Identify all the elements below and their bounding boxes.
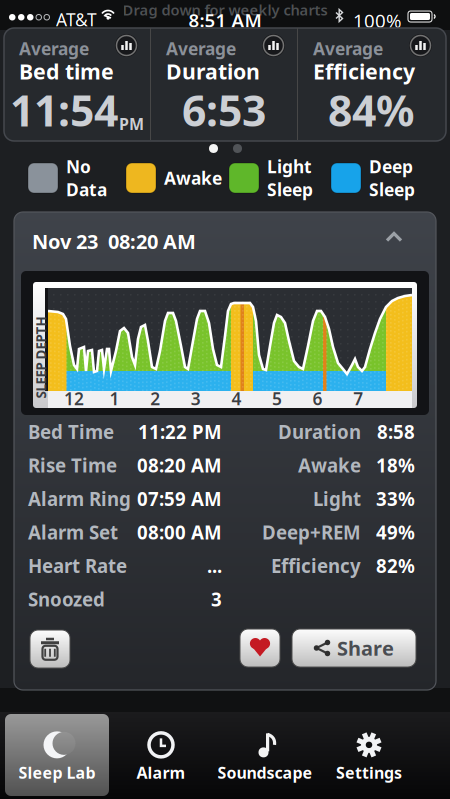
button[interactable]: Sleep Lab <box>5 714 109 796</box>
staticText: Sleep Lab <box>18 762 95 783</box>
button[interactable]: Settings <box>317 714 421 796</box>
staticText: 12 <box>64 387 84 410</box>
staticText: Efficiency <box>313 57 415 85</box>
staticText: Alarm <box>136 762 185 783</box>
staticText: 11:54 <box>10 82 118 138</box>
staticText: 1 <box>110 387 120 410</box>
staticText: Snoozed <box>28 587 105 612</box>
staticText: 11:22 PM <box>138 419 222 444</box>
staticText: 07:59 AM <box>137 486 222 511</box>
staticText: ... <box>207 553 222 578</box>
button[interactable]: History chart <box>262 34 285 57</box>
staticText: Drag down for weekly charts <box>122 0 327 19</box>
button[interactable]: History chart <box>409 34 432 57</box>
button[interactable]: Collapse <box>375 221 413 253</box>
staticText: No <box>66 155 91 178</box>
staticText: Sleep <box>369 178 415 201</box>
staticText: 8:58 <box>377 419 415 444</box>
staticText: 33% <box>376 486 415 511</box>
staticText: PM <box>119 113 144 134</box>
staticText: 84% <box>328 82 414 138</box>
staticText: Bed time <box>19 57 114 85</box>
staticText: 2 <box>150 387 160 410</box>
staticText: Duration <box>278 419 361 444</box>
staticText: Duration <box>166 57 260 85</box>
staticText: 8:51 AM <box>188 7 261 32</box>
button[interactable]: Share <box>292 629 416 667</box>
staticText: Efficiency <box>271 553 361 578</box>
staticText: Awake <box>298 453 361 478</box>
staticText: Settings <box>336 762 402 783</box>
staticText: 100% <box>353 8 402 33</box>
staticText: Soundscape <box>217 762 312 783</box>
staticText: Sleep <box>267 178 313 201</box>
button[interactable]: Alarm <box>109 714 213 796</box>
staticText: Light <box>313 486 361 511</box>
staticText: Average <box>313 37 383 60</box>
staticText: Rise Time <box>28 453 117 478</box>
staticText: 82% <box>376 553 415 578</box>
staticText: Heart Rate <box>28 553 127 578</box>
button[interactable]: Soundscape <box>213 714 317 796</box>
staticText: 08:00 AM <box>137 520 222 545</box>
staticText: Nov 23 08:20 AM <box>32 228 196 255</box>
staticText: Deep+REM <box>262 520 361 545</box>
staticText: 6 <box>313 387 323 410</box>
staticText: Alarm Set <box>28 520 118 545</box>
button[interactable]: History chart <box>115 34 138 57</box>
staticText: 49% <box>376 520 415 545</box>
staticText: Share <box>337 635 394 661</box>
staticText: 5 <box>272 387 282 410</box>
button[interactable]: Delete <box>30 630 70 668</box>
staticText: 6:53 <box>182 82 266 138</box>
staticText: AT&T <box>56 8 97 31</box>
staticText: 7 <box>353 387 363 410</box>
staticText: Bed Time <box>28 419 114 444</box>
staticText: 3 <box>211 587 222 612</box>
staticText: Average <box>166 37 236 60</box>
staticText: Alarm Ring <box>28 486 131 511</box>
button[interactable]: Favorite <box>240 629 280 667</box>
staticText: 4 <box>231 387 241 410</box>
staticText: SLEEP DEPTH <box>0 349 82 366</box>
staticText: Awake <box>164 166 222 189</box>
staticText: 18% <box>376 453 415 478</box>
staticText: Deep <box>369 155 413 178</box>
staticText: 3 <box>191 387 201 410</box>
staticText: Average <box>19 37 89 60</box>
staticText: Light <box>267 155 312 178</box>
staticText: Data <box>66 178 107 201</box>
staticText: 08:20 AM <box>137 453 222 478</box>
